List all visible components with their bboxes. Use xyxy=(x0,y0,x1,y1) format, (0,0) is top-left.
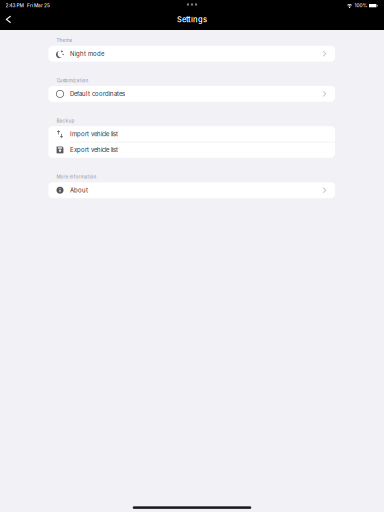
staticText: Import vehicle list xyxy=(70,130,118,138)
staticText: Theme xyxy=(56,38,72,43)
button[interactable]: Export vehicle list xyxy=(0,0,384,512)
staticText: Customization xyxy=(56,78,88,83)
button[interactable]: About xyxy=(0,0,384,512)
staticText: Fri Mar 25 xyxy=(27,3,50,8)
button[interactable]: Default coordinates xyxy=(0,0,384,512)
staticText: Backup xyxy=(56,118,74,124)
staticText: Export vehicle list xyxy=(70,146,118,154)
staticText: 100% xyxy=(354,3,367,8)
staticText: More information xyxy=(56,174,96,180)
button[interactable]: Import vehicle list xyxy=(0,0,384,512)
staticText: Night mode xyxy=(70,50,104,57)
button[interactable]: Night mode xyxy=(0,0,384,512)
button[interactable]: Back xyxy=(0,0,384,512)
staticText: Default coordinates xyxy=(70,90,125,98)
staticText: Settings xyxy=(177,15,207,24)
staticText: 2:43 PM xyxy=(5,3,23,8)
staticText: About xyxy=(70,187,88,194)
